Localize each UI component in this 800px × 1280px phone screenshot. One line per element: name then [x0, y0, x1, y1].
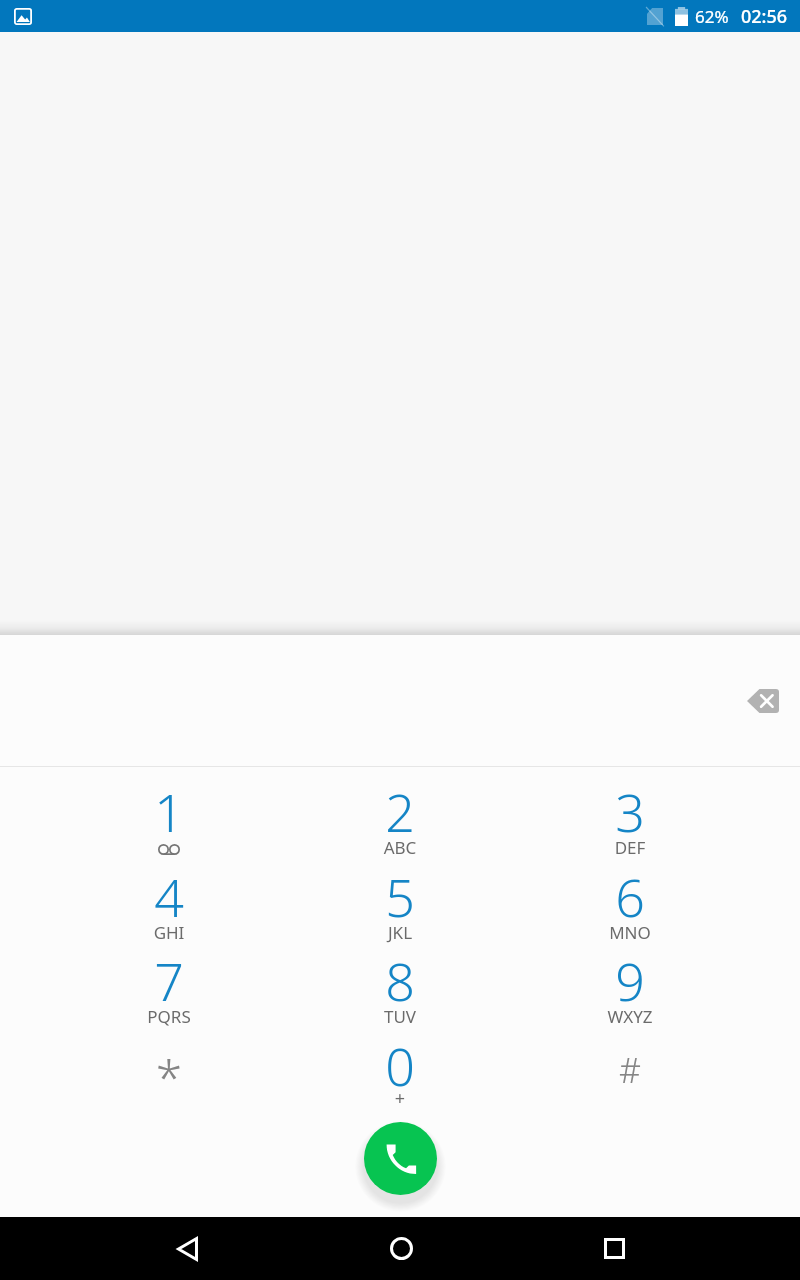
staticText: 0 — [325, 1030, 475, 1101]
button[interactable]: 6 — [555, 861, 705, 946]
staticText: 4 — [94, 861, 244, 932]
staticText: DEF — [555, 836, 705, 859]
button[interactable]: 0 — [325, 1030, 475, 1115]
staticText: WXYZ — [555, 1005, 705, 1028]
staticText: + — [325, 1086, 475, 1111]
staticText: TUV — [325, 1005, 475, 1028]
button[interactable]: Backspace — [739, 677, 787, 725]
button[interactable]: 8 — [325, 945, 475, 1030]
button[interactable]: * — [94, 1030, 244, 1115]
button[interactable]: Home — [361, 1217, 441, 1280]
button[interactable]: Recent apps — [574, 1217, 654, 1280]
button[interactable]: 4 — [94, 861, 244, 946]
button[interactable]: 9 — [555, 945, 705, 1030]
button[interactable]: 3 — [555, 776, 705, 861]
staticText: 6 — [555, 861, 705, 932]
staticText: * — [94, 1044, 244, 1109]
staticText: 2 — [325, 776, 475, 847]
staticText: MNO — [555, 921, 705, 944]
staticText: JKL — [325, 921, 475, 944]
staticText: PQRS — [94, 1005, 244, 1028]
staticText: ABC — [325, 836, 475, 859]
button[interactable]: Call — [364, 1122, 437, 1195]
button[interactable]: 2 — [325, 776, 475, 861]
staticText: 9 — [555, 945, 705, 1016]
button[interactable]: Back — [147, 1217, 227, 1280]
staticText: 1 — [94, 776, 244, 847]
staticText: 7 — [94, 945, 244, 1016]
staticText: # — [555, 1047, 705, 1093]
staticText: 3 — [555, 776, 705, 847]
staticText: 62% — [695, 5, 729, 28]
staticText: 8 — [325, 945, 475, 1016]
staticText: GHI — [94, 921, 244, 944]
button[interactable]: 7 — [94, 945, 244, 1030]
button[interactable]: 1 — [94, 776, 244, 861]
button[interactable]: # — [555, 1030, 705, 1115]
staticText: 02:56 — [741, 4, 788, 29]
button[interactable]: 5 — [325, 861, 475, 946]
staticText: 5 — [325, 861, 475, 932]
